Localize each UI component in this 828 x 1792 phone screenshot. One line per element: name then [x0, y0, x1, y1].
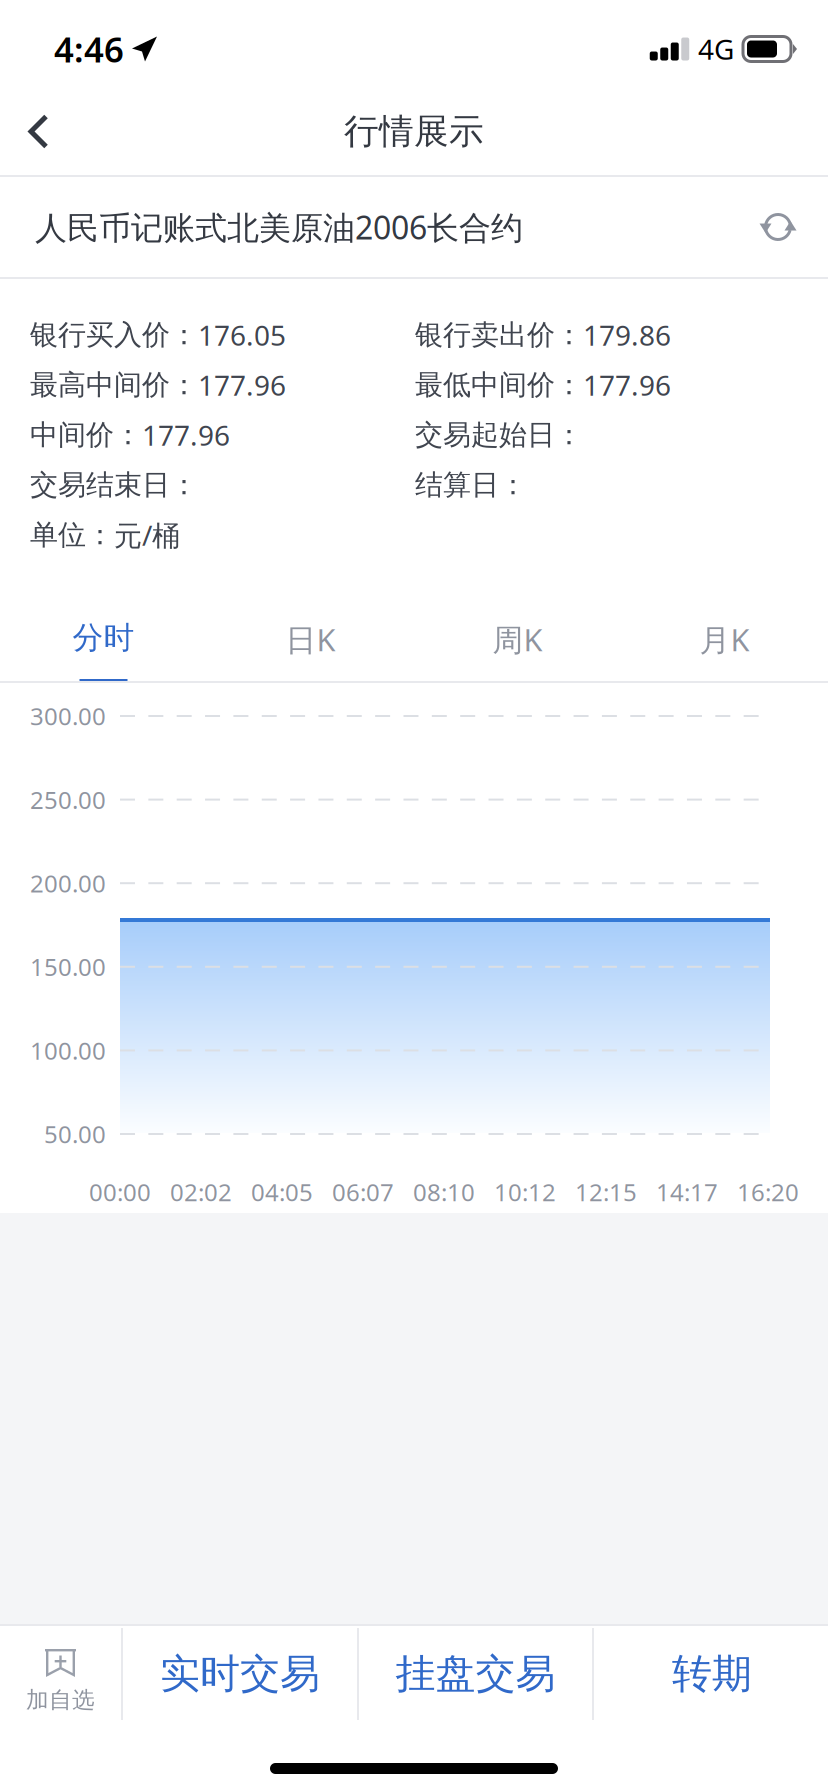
staticText: 200.00	[30, 867, 106, 899]
staticText: 日K	[285, 619, 335, 660]
staticText: 00:00	[89, 1176, 151, 1208]
staticText: 06:07	[332, 1176, 394, 1208]
staticText: 最高中间价：	[30, 368, 198, 402]
staticText: 02:02	[170, 1176, 232, 1208]
staticText: 交易起始日：	[415, 418, 583, 452]
staticText: 分时	[72, 619, 134, 657]
staticText: 交易结束日：	[30, 468, 198, 502]
button[interactable]: 日K	[207, 578, 414, 681]
button[interactable]: 月K	[621, 578, 828, 681]
staticText: 4G	[698, 30, 734, 68]
button[interactable]: 周K	[414, 578, 621, 681]
staticText: 100.00	[30, 1034, 106, 1066]
staticText: 最低中间价：	[415, 368, 583, 402]
staticText: 14:17	[656, 1176, 718, 1208]
button[interactable]: 分时	[0, 578, 207, 681]
staticText: 行情展示	[344, 110, 484, 153]
button[interactable]: 实时交易	[123, 1626, 357, 1722]
staticText: 元/桶	[114, 516, 180, 554]
staticText: 16:20	[737, 1176, 799, 1208]
button[interactable]: 转期	[594, 1626, 828, 1722]
staticText: 04:05	[251, 1176, 313, 1208]
staticText: 中间价：	[30, 418, 142, 452]
staticText: 实时交易	[160, 1649, 320, 1698]
button[interactable]: Back	[0, 88, 85, 175]
staticText: 50.00	[44, 1118, 106, 1150]
staticText: 177.96	[142, 416, 230, 454]
staticText: 177.96	[198, 366, 286, 404]
staticText: 结算日：	[415, 468, 527, 502]
staticText: 银行买入价：	[30, 318, 198, 352]
staticText: 挂盘交易	[395, 1649, 555, 1698]
staticText: 人民币记账式北美原油2006长合约	[35, 206, 523, 248]
staticText: 单位：	[30, 518, 114, 552]
staticText: 150.00	[30, 951, 106, 983]
button[interactable]: Refresh	[752, 202, 804, 252]
staticText: 10:12	[494, 1176, 556, 1208]
button[interactable]: 加自选	[0, 1626, 121, 1722]
staticText: 176.05	[198, 316, 286, 354]
staticText: 4:46	[54, 26, 124, 72]
staticText: 300.00	[30, 700, 106, 732]
staticText: 周K	[492, 619, 542, 660]
staticText: 177.96	[583, 366, 671, 404]
staticText: 转期	[672, 1649, 752, 1698]
staticText: 加自选	[26, 1686, 95, 1714]
staticText: 179.86	[583, 316, 671, 354]
staticText: 12:15	[575, 1176, 637, 1208]
staticText: 月K	[699, 619, 749, 660]
staticText: 08:10	[413, 1176, 475, 1208]
staticText: 银行卖出价：	[415, 318, 583, 352]
button[interactable]: 挂盘交易	[359, 1626, 592, 1722]
staticText: 250.00	[30, 784, 106, 816]
